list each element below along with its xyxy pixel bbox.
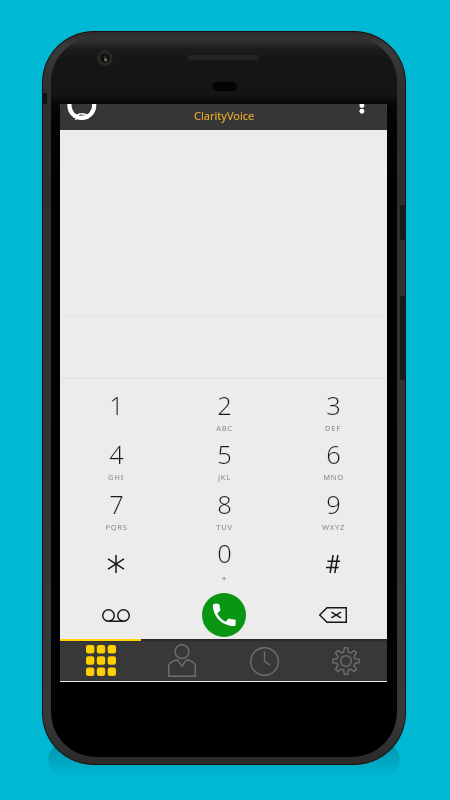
staticText: 0: [217, 536, 232, 571]
staticText: JKL: [218, 472, 231, 482]
button[interactable]: Voicemail: [62, 589, 170, 641]
staticText: DEF: [325, 423, 341, 433]
button[interactable]: 3: [279, 384, 387, 433]
staticText: 8: [217, 487, 232, 522]
button[interactable]: Settings: [305, 639, 387, 681]
button[interactable]: [279, 532, 387, 581]
staticText: 4: [109, 437, 124, 472]
staticText: WXYZ: [322, 522, 345, 532]
staticText: 3: [326, 388, 341, 423]
button[interactable]: [62, 532, 170, 581]
staticText: TUV: [216, 522, 233, 532]
staticText: MNO: [323, 472, 344, 482]
button[interactable]: Contacts: [141, 639, 223, 681]
staticText: PQRS: [105, 522, 128, 532]
staticText: 7: [109, 487, 124, 522]
staticText: ABC: [216, 423, 233, 433]
button[interactable]: 2: [170, 384, 278, 433]
button[interactable]: Call: [170, 589, 278, 641]
staticText: 5: [217, 437, 232, 472]
staticText: 1: [109, 388, 124, 423]
staticText: 9: [326, 487, 341, 522]
button[interactable]: 0: [170, 532, 278, 581]
staticText: ClarityVoice: [194, 108, 255, 123]
button[interactable]: 9: [279, 483, 387, 532]
button[interactable]: 1: [62, 384, 170, 433]
button[interactable]: 7: [62, 483, 170, 532]
button[interactable]: Recents: [223, 639, 305, 681]
button[interactable]: 4: [62, 433, 170, 482]
button[interactable]: 6: [279, 433, 387, 482]
button[interactable]: Backspace: [279, 589, 387, 641]
staticText: 2: [217, 388, 232, 423]
button[interactable]: More options: [357, 104, 387, 130]
button[interactable]: 8: [170, 483, 278, 532]
staticText: GHI: [108, 472, 124, 482]
button[interactable]: Keypad: [60, 639, 141, 681]
staticText: +: [221, 572, 227, 584]
button[interactable]: 5: [170, 433, 278, 482]
staticText: 6: [326, 437, 341, 472]
